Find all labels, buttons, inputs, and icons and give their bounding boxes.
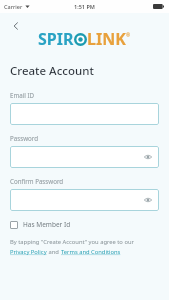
staticText: Confirm Password <box>10 177 64 185</box>
staticText: Email ID <box>10 91 35 99</box>
button[interactable]: Terms and Conditions <box>61 248 121 256</box>
button[interactable]: Back <box>8 18 24 34</box>
staticText: Password <box>10 134 38 142</box>
button[interactable]: Show password <box>143 152 153 162</box>
staticText: Has Member Id <box>23 220 71 229</box>
staticText: Carrier <box>4 3 23 10</box>
button[interactable]: Has Member Id <box>10 220 71 229</box>
staticText: 1:51 PM <box>74 3 95 10</box>
staticText: By tapping "Create Account" you agree to… <box>10 238 134 246</box>
staticText: Terms and Conditions <box>61 248 121 256</box>
staticText: LINK <box>87 28 126 50</box>
button[interactable]: Show confirm password <box>143 195 153 205</box>
staticText: Privacy Policy <box>10 248 47 256</box>
button[interactable]: Privacy Policy <box>10 248 47 256</box>
staticText: Create Account <box>10 63 94 79</box>
staticText: ® <box>126 32 131 39</box>
staticText: and <box>47 248 61 256</box>
button[interactable] <box>10 103 159 125</box>
staticText: SPIR <box>38 28 74 50</box>
button[interactable]: Show password <box>10 146 159 168</box>
button[interactable]: Show confirm password <box>10 189 159 211</box>
